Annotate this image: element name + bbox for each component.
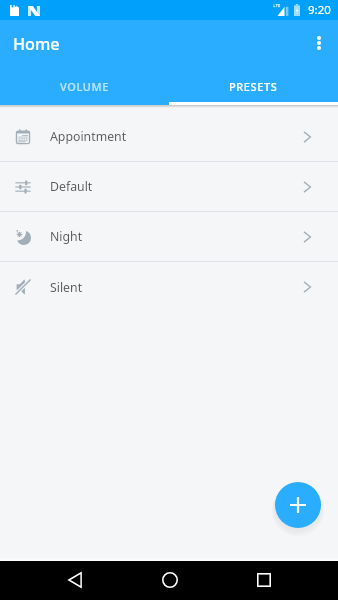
button[interactable]: Back (55, 561, 94, 600)
button[interactable]: Silent (0, 262, 338, 312)
button[interactable]: Recents (244, 561, 283, 600)
staticText: Default (50, 178, 93, 195)
staticText: PRESETS (229, 79, 278, 94)
staticText: Silent (50, 279, 83, 296)
button[interactable]: Home (150, 561, 189, 600)
button[interactable]: PRESETS (169, 68, 338, 105)
button[interactable]: More options (299, 20, 338, 68)
button[interactable]: Night (0, 212, 338, 262)
staticText: 9:20 (308, 2, 331, 18)
button[interactable]: VOLUME (0, 68, 169, 105)
staticText: VOLUME (60, 79, 109, 94)
staticText: Appointment (50, 128, 127, 145)
button[interactable]: Add preset (275, 482, 321, 528)
staticText: Home (13, 33, 60, 55)
staticText: Night (50, 228, 83, 245)
button[interactable]: Appointment (0, 112, 338, 162)
button[interactable]: Default (0, 162, 338, 212)
